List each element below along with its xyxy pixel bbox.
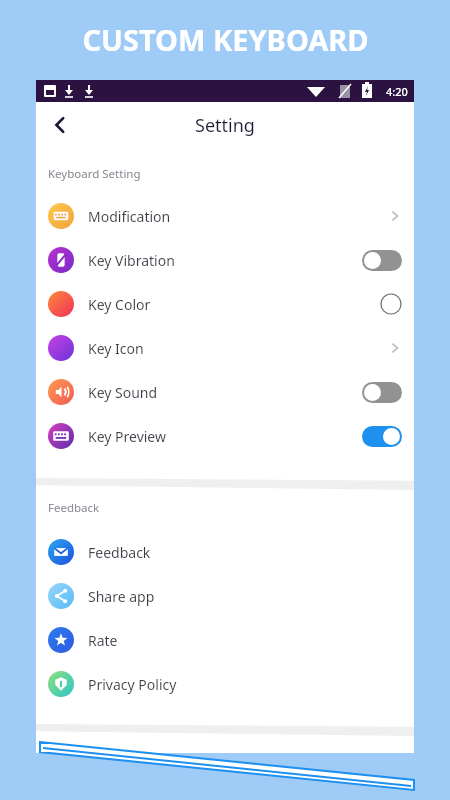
button[interactable]: Off [362, 382, 402, 403]
button[interactable]: Key Color [36, 282, 414, 326]
button[interactable]: Key Icon [36, 326, 414, 370]
staticText: Privacy Policy [88, 675, 177, 694]
button[interactable]: Key Sound [36, 370, 414, 414]
button[interactable]: Privacy Policy [36, 662, 414, 706]
staticText: Keyboard Setting [48, 166, 141, 182]
button[interactable]: Off [362, 250, 402, 271]
staticText: Setting [195, 113, 255, 138]
button[interactable]: On [362, 426, 402, 447]
staticText: Feedback [48, 500, 100, 516]
staticText: Modification [88, 207, 171, 226]
staticText: Key Icon [88, 339, 144, 358]
button[interactable]: Key Preview [36, 414, 414, 458]
button[interactable]: Rate [36, 618, 414, 662]
staticText: Share app [88, 587, 155, 606]
staticText: Rate [88, 631, 118, 650]
staticText: 4:20 [386, 84, 408, 99]
button[interactable]: Feedback [36, 530, 414, 574]
staticText: Feedback [88, 543, 151, 562]
staticText: Key Vibration [88, 251, 175, 270]
button[interactable]: Modification [36, 194, 414, 238]
staticText: Key Sound [88, 383, 158, 402]
button[interactable]: Key Vibration [36, 238, 414, 282]
staticText: Key Preview [88, 427, 166, 446]
staticText: CUSTOM KEYBOARD [82, 20, 369, 59]
button[interactable]: Share app [36, 574, 414, 618]
staticText: Key Color [88, 295, 151, 314]
button[interactable]: Back [40, 105, 80, 145]
